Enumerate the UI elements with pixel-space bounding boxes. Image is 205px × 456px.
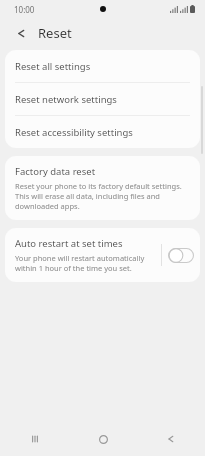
staticText: Reset all settings [15, 60, 91, 73]
staticText: Reset network settings [15, 93, 117, 106]
button[interactable]: Reset accessibility settings [5, 116, 200, 148]
button[interactable]: Home [69, 422, 137, 456]
staticText: Auto restart at set times [15, 237, 123, 250]
button[interactable]: Auto restart at set times toggle [168, 248, 194, 263]
button[interactable]: Reset network settings [5, 83, 200, 115]
staticText: Your phone will restart automatically wi… [15, 253, 161, 273]
staticText: Reset accessibility settings [15, 126, 133, 139]
button[interactable]: Back [137, 422, 205, 456]
button[interactable]: Factory data reset [5, 156, 200, 220]
button[interactable]: Auto restart at set times [5, 228, 200, 282]
staticText: Reset your phone to its factory default … [15, 181, 190, 211]
staticText: Reset [38, 24, 72, 42]
staticText: Factory data reset [15, 165, 96, 178]
button[interactable]: Recent apps [0, 422, 69, 456]
staticText: 10:00 [14, 4, 35, 15]
button[interactable]: Reset all settings [5, 50, 200, 82]
button[interactable]: Back [11, 23, 31, 43]
